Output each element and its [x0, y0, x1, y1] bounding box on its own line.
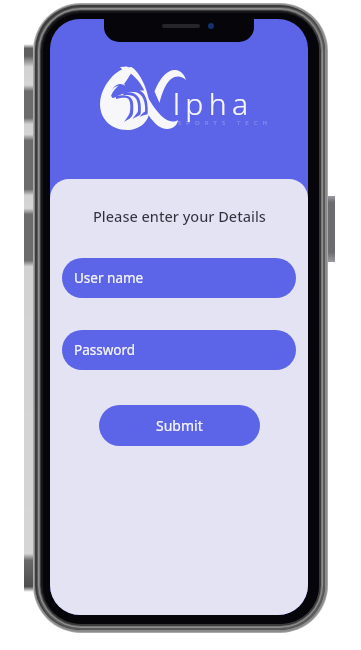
staticText: S P O R T S T E C H: [178, 119, 269, 127]
staticText: lpha: [173, 83, 254, 124]
button[interactable]: Password: [62, 330, 296, 370]
staticText: User name: [74, 269, 144, 287]
button[interactable]: User name: [62, 258, 296, 298]
staticText: Submit: [156, 416, 203, 435]
button[interactable]: Submit: [99, 405, 260, 446]
staticText: Please enter your Details: [93, 206, 266, 226]
staticText: Password: [74, 341, 136, 359]
